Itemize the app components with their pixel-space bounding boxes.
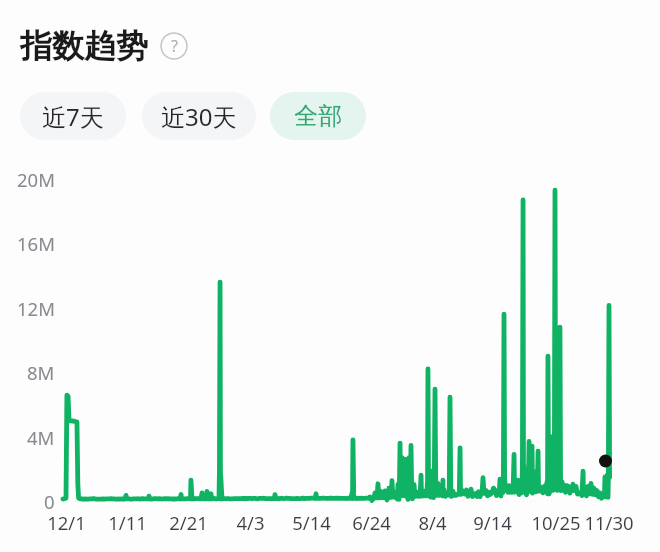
staticText: 8/4 — [418, 510, 447, 534]
button[interactable]: 帮助 — [160, 32, 188, 60]
staticText: 指数趋势 — [20, 26, 148, 66]
staticText: 10/25 — [531, 510, 581, 534]
staticText: 20M — [17, 167, 55, 191]
staticText: 全部 — [294, 101, 342, 131]
staticText: 近30天 — [161, 100, 237, 133]
staticText: 0 — [44, 489, 55, 513]
staticText: 4/3 — [236, 510, 265, 534]
staticText: 12M — [17, 296, 55, 320]
staticText: 16M — [17, 231, 55, 255]
button[interactable]: 全部 — [270, 92, 366, 140]
staticText: 11/30 — [584, 510, 634, 534]
staticText: ? — [171, 35, 178, 57]
staticText: 9/14 — [473, 510, 512, 534]
staticText: 4M — [27, 425, 55, 449]
staticText: 2/21 — [169, 510, 208, 534]
staticText: 近7天 — [42, 100, 104, 133]
button[interactable]: 近30天 — [142, 92, 256, 140]
staticText: 5/14 — [292, 510, 331, 534]
staticText: 12/1 — [47, 510, 86, 534]
staticText: 6/24 — [352, 510, 391, 534]
staticText: 1/11 — [108, 510, 147, 534]
button[interactable]: 近7天 — [20, 92, 126, 140]
staticText: 8M — [27, 360, 55, 384]
